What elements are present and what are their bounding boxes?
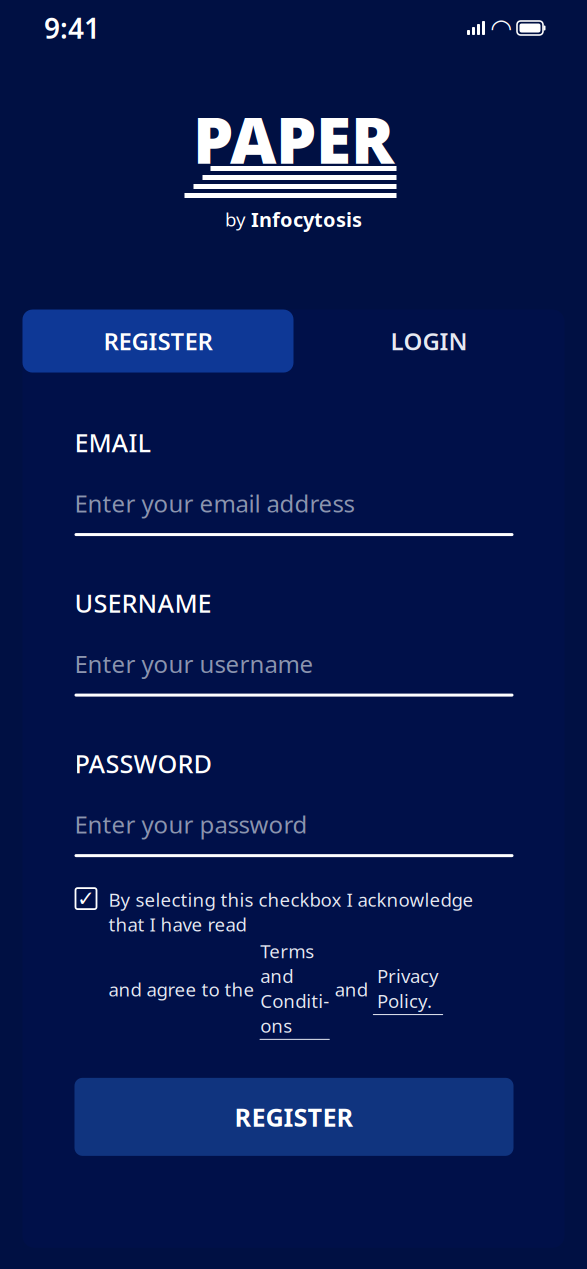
- staticText: REGISTER: [103, 325, 212, 357]
- staticText: by: [225, 207, 246, 232]
- button[interactable]: Terms and Conditions: [259, 939, 330, 1040]
- staticText: PASSWORD: [74, 747, 212, 780]
- staticText: 9:41: [44, 9, 100, 47]
- staticText: Enter your username: [74, 648, 313, 680]
- staticText: and: [330, 977, 373, 1002]
- button[interactable]: Privacy Policy.: [373, 963, 443, 1015]
- staticText: USERNAME: [74, 586, 211, 620]
- staticText: LOGIN: [390, 325, 467, 357]
- staticText: Enter your password: [74, 808, 307, 840]
- staticText: ◠: [491, 14, 510, 42]
- button[interactable]: REGISTER: [74, 1078, 513, 1156]
- staticText: Infocytosis: [251, 206, 362, 233]
- staticText: Terms and Conditions: [260, 939, 329, 1038]
- staticText: EMAIL: [74, 426, 151, 459]
- staticText: PAPER: [193, 96, 394, 181]
- staticText: ✓: [77, 886, 95, 911]
- staticText: REGISTER: [234, 1100, 353, 1134]
- staticText: Enter your email address: [74, 487, 354, 519]
- staticText: Privacy Policy.: [377, 963, 439, 1013]
- staticText: By selecting this checkbox I acknowledge…: [108, 887, 473, 937]
- button[interactable]: Accept terms and conditions: [74, 887, 97, 910]
- staticText: and agree to the: [108, 977, 259, 1002]
- button[interactable]: REGISTER: [22, 310, 293, 373]
- button[interactable]: LOGIN: [293, 310, 564, 373]
